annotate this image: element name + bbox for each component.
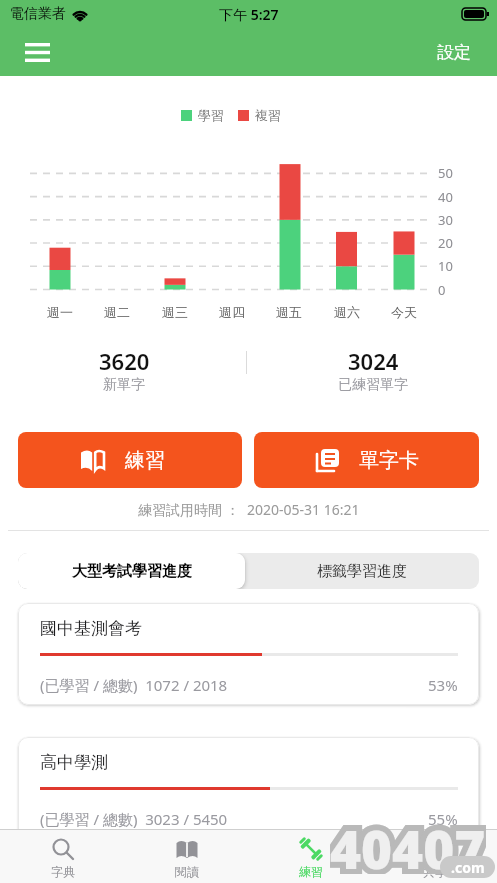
- button[interactable]: 標籤學習進度: [245, 553, 479, 589]
- staticText: 大型考試學習進度: [72, 562, 192, 581]
- button[interactable]: 閱讀: [125, 830, 249, 883]
- staticText: 50: [438, 164, 453, 182]
- staticText: 55%: [428, 809, 458, 829]
- staticText: 30: [438, 211, 453, 229]
- button[interactable]: 高中學測: [18, 737, 479, 839]
- button[interactable]: 設定: [437, 42, 471, 63]
- staticText: 週二: [104, 304, 130, 320]
- staticText: 閱讀: [175, 864, 199, 879]
- button[interactable]: 國中基測會考: [18, 603, 479, 705]
- staticText: 複習: [255, 107, 281, 123]
- staticText: 新單字: [103, 376, 145, 394]
- staticText: 週三: [162, 304, 188, 320]
- button[interactable]: 大型考試學習進度: [18, 553, 245, 589]
- staticText: 單字卡: [359, 448, 419, 473]
- staticText: 標籤學習進度: [317, 562, 407, 581]
- staticText: 練習試用時間 ：: [138, 500, 247, 519]
- staticText: 國中基測會考: [40, 618, 142, 639]
- button[interactable]: 字典: [0, 830, 125, 883]
- button[interactable]: 練習: [18, 432, 242, 488]
- staticText: 練習: [299, 864, 323, 879]
- button[interactable]: 單字卡: [254, 432, 479, 488]
- staticText: 10: [438, 257, 453, 275]
- staticText: (已學習 / 總數) 1072 / 2018: [40, 675, 228, 695]
- staticText: .com: [451, 858, 485, 877]
- staticText: 學習: [198, 107, 224, 123]
- staticText: 高中學測: [40, 752, 108, 773]
- staticText: 週四: [219, 304, 245, 320]
- staticText: 今天: [391, 304, 417, 320]
- staticText: 下午 5:27: [219, 5, 279, 24]
- staticText: 共享: [423, 864, 447, 879]
- staticText: 已練習單字: [338, 376, 408, 394]
- staticText: 40407: [330, 812, 486, 874]
- staticText: 2020-05-31 16:21: [247, 500, 360, 519]
- staticText: (已學習 / 總數) 3023 / 5450: [40, 809, 228, 829]
- staticText: 3620: [99, 346, 150, 376]
- button[interactable]: [21, 36, 53, 68]
- staticText: 40407: [330, 812, 486, 874]
- staticText: 週五: [276, 304, 302, 320]
- staticText: 週一: [47, 304, 73, 320]
- staticText: 3024: [348, 346, 399, 376]
- button[interactable]: 共享: [373, 830, 497, 883]
- staticText: 40: [438, 188, 453, 206]
- staticText: 20: [438, 234, 453, 252]
- staticText: 53%: [428, 675, 458, 695]
- staticText: 電信業者: [10, 5, 66, 23]
- staticText: 練習: [125, 448, 165, 473]
- staticText: 字典: [51, 864, 75, 879]
- button[interactable]: 練習: [249, 830, 373, 883]
- staticText: 週六: [334, 304, 360, 320]
- staticText: 設定: [437, 42, 471, 63]
- staticText: 0: [438, 281, 446, 299]
